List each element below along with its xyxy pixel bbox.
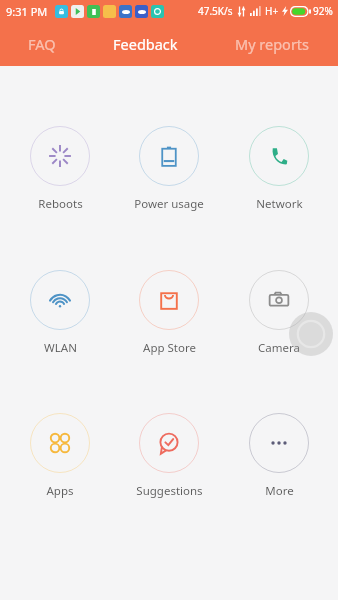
other: Camera bbox=[249, 270, 309, 330]
staticText: 92% bbox=[313, 4, 333, 18]
staticText: FAQ bbox=[28, 34, 56, 54]
button[interactable]: My reports bbox=[225, 26, 320, 62]
staticText: Apps bbox=[46, 483, 74, 499]
staticText: App Store bbox=[143, 340, 196, 356]
button[interactable]: Suggestions bbox=[119, 413, 219, 499]
staticText: WLAN bbox=[44, 340, 77, 356]
button[interactable]: Feedback bbox=[103, 26, 188, 62]
other: App Store bbox=[139, 270, 199, 330]
staticText: More bbox=[265, 483, 294, 499]
staticText: My reports bbox=[235, 34, 310, 54]
button[interactable]: Assistive ball bbox=[289, 312, 333, 356]
other: WLAN bbox=[30, 270, 90, 330]
other: Power usage bbox=[139, 126, 199, 186]
button[interactable]: Reboots bbox=[10, 126, 110, 212]
button[interactable]: Network bbox=[229, 126, 329, 212]
button[interactable]: Power usage bbox=[119, 126, 219, 212]
staticText: Power usage bbox=[134, 196, 204, 212]
button[interactable]: Apps bbox=[10, 413, 110, 499]
staticText: Suggestions bbox=[136, 483, 203, 499]
other: Suggestions bbox=[139, 413, 199, 473]
other: Apps bbox=[30, 413, 90, 473]
staticText: H+ bbox=[265, 4, 279, 18]
button[interactable]: App Store bbox=[119, 270, 219, 356]
button[interactable]: Camera bbox=[229, 270, 329, 356]
button[interactable]: FAQ bbox=[18, 26, 66, 62]
staticText: Reboots bbox=[38, 196, 83, 212]
staticText: Feedback bbox=[113, 34, 178, 54]
button[interactable]: More bbox=[229, 413, 329, 499]
other: Network bbox=[249, 126, 309, 186]
staticText: Network bbox=[256, 196, 303, 212]
staticText: 9:31 PM bbox=[6, 4, 48, 19]
button[interactable]: WLAN bbox=[10, 270, 110, 356]
staticText: Camera bbox=[258, 340, 300, 356]
staticText: 47.5K/s bbox=[198, 4, 233, 18]
other: More bbox=[249, 413, 309, 473]
other: Reboots bbox=[30, 126, 90, 186]
